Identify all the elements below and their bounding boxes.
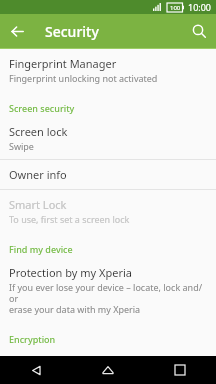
button[interactable]: Back bbox=[13, 356, 59, 384]
button[interactable]: Search bbox=[182, 14, 216, 48]
staticText: Owner info bbox=[9, 167, 67, 182]
staticText: Fingerprint unlocking not activated bbox=[9, 72, 158, 84]
staticText: Smart Lock bbox=[9, 197, 67, 212]
staticText: Find my device bbox=[9, 243, 73, 255]
staticText: Protection by my Xperia bbox=[9, 265, 132, 280]
button[interactable]: Fingerprint Manager bbox=[0, 49, 216, 91]
staticText: If you ever lose your device – locate, l… bbox=[9, 281, 207, 315]
button[interactable]: Back bbox=[0, 14, 34, 48]
staticText: Encryption bbox=[9, 333, 56, 345]
staticText: Fingerprint Manager bbox=[9, 56, 117, 71]
button[interactable]: Smart Lock bbox=[0, 190, 216, 232]
button[interactable]: Owner info bbox=[0, 160, 216, 189]
staticText: Screen security bbox=[9, 102, 75, 114]
button[interactable]: Home bbox=[85, 356, 131, 384]
button[interactable]: Recent apps bbox=[157, 356, 203, 384]
button[interactable]: Screen lock bbox=[0, 117, 216, 159]
staticText: 100 bbox=[170, 4, 181, 12]
staticText: To use, first set a screen lock bbox=[9, 213, 130, 225]
staticText: Screen lock bbox=[9, 124, 68, 139]
staticText: Security bbox=[45, 22, 99, 41]
staticText: Swipe bbox=[9, 140, 34, 152]
button[interactable]: Protection by my Xperia bbox=[0, 258, 216, 322]
staticText: 10:00 bbox=[188, 1, 212, 13]
